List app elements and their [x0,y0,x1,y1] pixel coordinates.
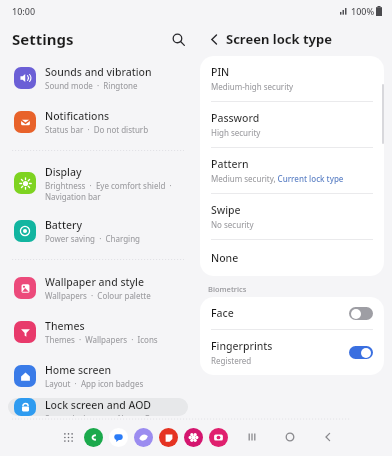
button[interactable]: Home [280,427,300,447]
staticText: 100% [351,5,375,17]
staticText: Power saving · Charging [45,233,141,244]
button[interactable]: Back [318,427,338,447]
button[interactable]: Notifications [8,100,188,144]
button[interactable]: Password [200,102,384,147]
staticText: Medium-high security [211,81,294,92]
staticText: PIN [211,65,230,79]
staticText: Display [45,165,82,179]
button[interactable]: Internet [134,428,153,447]
button[interactable]: Messages [109,428,128,447]
staticText: High security [211,127,261,138]
staticText: Wallpapers · Colour palette [45,290,151,301]
staticText: None [211,251,239,265]
button[interactable]: Back [203,28,225,50]
button[interactable]: Swipe [200,194,384,239]
button[interactable]: Search [166,27,190,51]
staticText: Themes · Wallpapers · Icons [45,334,158,345]
button[interactable]: PIN [200,56,384,101]
button[interactable]: Recents [242,427,262,447]
staticText: Sounds and vibration [45,65,152,79]
staticText: Password [211,111,260,125]
staticText: Battery [45,218,82,232]
staticText: Status bar · Do not disturb [45,124,149,135]
staticText: Themes [45,319,85,333]
button[interactable]: Battery [8,209,188,253]
staticText: Biometrics [208,284,247,294]
staticText: Settings [12,29,74,49]
button[interactable]: Apps [58,427,78,447]
button[interactable]: Fingerprints [200,330,384,375]
button[interactable]: None [200,240,384,276]
button[interactable]: Display [8,157,188,209]
staticText: Sound mode · Ringtone [45,80,138,91]
staticText: Wallpaper and style [45,275,144,289]
staticText: Notifications [45,109,110,123]
button[interactable]: Face [200,297,384,329]
staticText: Pattern [211,157,249,171]
button[interactable]: Phone [84,428,103,447]
staticText: Layout · App icon badges [45,378,144,389]
staticText: No security [211,219,254,230]
button[interactable]: Gallery [184,428,203,447]
staticText: Lock screen and AOD [45,398,152,412]
staticText: Medium security, Current lock type [211,173,344,184]
button[interactable]: Pattern [200,148,384,193]
button[interactable]: Home screen [8,354,188,398]
button[interactable]: Lock screen and AOD [8,398,188,416]
button[interactable]: Notes [159,428,178,447]
staticText: Face [211,306,234,320]
staticText: Registered [211,355,252,366]
staticText: Brightness · Eye comfort shield · Naviga… [45,180,172,202]
button[interactable]: Camera [209,428,228,447]
staticText: Swipe [211,203,241,217]
staticText: 10:00 [12,5,36,17]
staticText: Screen lock type · Always On Display [45,413,182,416]
button[interactable]: Wallpaper and style [8,266,188,310]
button[interactable]: Themes [8,310,188,354]
staticText: Screen lock type [226,30,332,48]
staticText: Fingerprints [211,339,273,353]
button[interactable]: Sounds and vibration [8,56,188,100]
staticText: Home screen [45,363,112,377]
